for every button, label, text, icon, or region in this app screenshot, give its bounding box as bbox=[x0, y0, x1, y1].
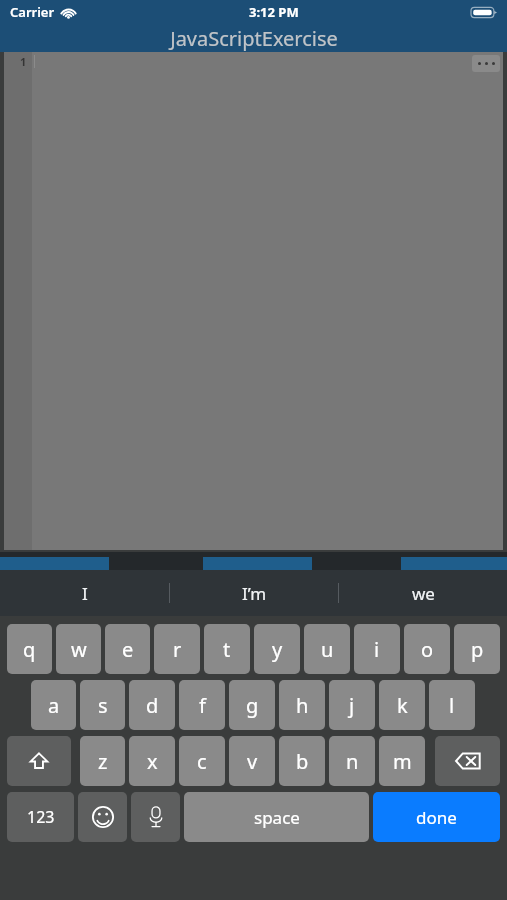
button[interactable]: u bbox=[304, 624, 350, 674]
staticText: v bbox=[247, 748, 258, 775]
button[interactable]: w bbox=[56, 624, 101, 674]
button[interactable]: space bbox=[184, 792, 369, 842]
button[interactable]: z bbox=[80, 736, 125, 786]
staticText: o bbox=[421, 636, 434, 663]
staticText: u bbox=[321, 636, 334, 663]
button[interactable]: m bbox=[379, 736, 425, 786]
button[interactable]: e bbox=[105, 624, 150, 674]
button[interactable]: done bbox=[373, 792, 500, 842]
staticText: 123 bbox=[27, 806, 55, 828]
staticText: 1 bbox=[20, 54, 27, 69]
staticText: k bbox=[397, 692, 408, 719]
button[interactable]: l bbox=[429, 680, 475, 730]
button[interactable]: Voice input bbox=[131, 792, 180, 842]
staticText: s bbox=[98, 692, 108, 719]
staticText: e bbox=[122, 636, 134, 663]
staticText: w bbox=[71, 636, 87, 663]
staticText: x bbox=[147, 748, 158, 775]
staticText: i bbox=[374, 636, 380, 663]
staticText: I bbox=[82, 582, 88, 605]
button[interactable]: s bbox=[80, 680, 125, 730]
button[interactable]: g bbox=[229, 680, 275, 730]
staticText: a bbox=[48, 692, 60, 719]
button[interactable]: p bbox=[454, 624, 500, 674]
button[interactable]: I bbox=[0, 570, 169, 616]
button[interactable]: y bbox=[254, 624, 300, 674]
staticText: j bbox=[349, 692, 355, 719]
button[interactable]: 123 bbox=[7, 792, 74, 842]
button[interactable]: we bbox=[339, 570, 507, 616]
staticText: we bbox=[412, 582, 435, 605]
button[interactable]: r bbox=[154, 624, 200, 674]
staticText: r bbox=[173, 636, 182, 663]
staticText: h bbox=[296, 692, 309, 719]
button[interactable]: Shift bbox=[7, 736, 71, 786]
staticText: 3:12 PM bbox=[249, 3, 299, 21]
staticText: t bbox=[223, 636, 231, 663]
staticText: I’m bbox=[242, 582, 267, 605]
button[interactable]: q bbox=[7, 624, 52, 674]
staticText: z bbox=[98, 748, 108, 775]
staticText: done bbox=[416, 806, 457, 829]
staticText: p bbox=[471, 636, 484, 663]
button[interactable]: More options bbox=[472, 55, 500, 72]
button[interactable]: v bbox=[229, 736, 275, 786]
button[interactable]: d bbox=[129, 680, 175, 730]
button[interactable]: h bbox=[279, 680, 325, 730]
button[interactable]: x bbox=[129, 736, 175, 786]
staticText: m bbox=[393, 748, 412, 775]
button[interactable]: n bbox=[329, 736, 375, 786]
staticText: y bbox=[272, 636, 283, 663]
staticText: d bbox=[146, 692, 159, 719]
staticText: JavaScriptExercise bbox=[170, 25, 338, 52]
staticText: Carrier bbox=[10, 3, 55, 21]
staticText: n bbox=[346, 748, 359, 775]
staticText: c bbox=[197, 748, 207, 775]
button[interactable]: Backspace bbox=[435, 736, 500, 786]
button[interactable]: c bbox=[179, 736, 225, 786]
button[interactable]: t bbox=[204, 624, 250, 674]
staticText: g bbox=[246, 692, 259, 719]
button[interactable]: b bbox=[279, 736, 325, 786]
button[interactable]: Emoji bbox=[78, 792, 127, 842]
staticText: space bbox=[254, 806, 300, 829]
button[interactable]: j bbox=[329, 680, 375, 730]
button[interactable]: I’m bbox=[170, 570, 338, 616]
staticText: l bbox=[449, 692, 455, 719]
staticText: b bbox=[296, 748, 309, 775]
button[interactable]: a bbox=[31, 680, 76, 730]
staticText: q bbox=[23, 636, 36, 663]
staticText: f bbox=[199, 692, 206, 719]
button[interactable]: o bbox=[404, 624, 450, 674]
button[interactable]: f bbox=[179, 680, 225, 730]
button[interactable]: i bbox=[354, 624, 400, 674]
button[interactable]: k bbox=[379, 680, 425, 730]
